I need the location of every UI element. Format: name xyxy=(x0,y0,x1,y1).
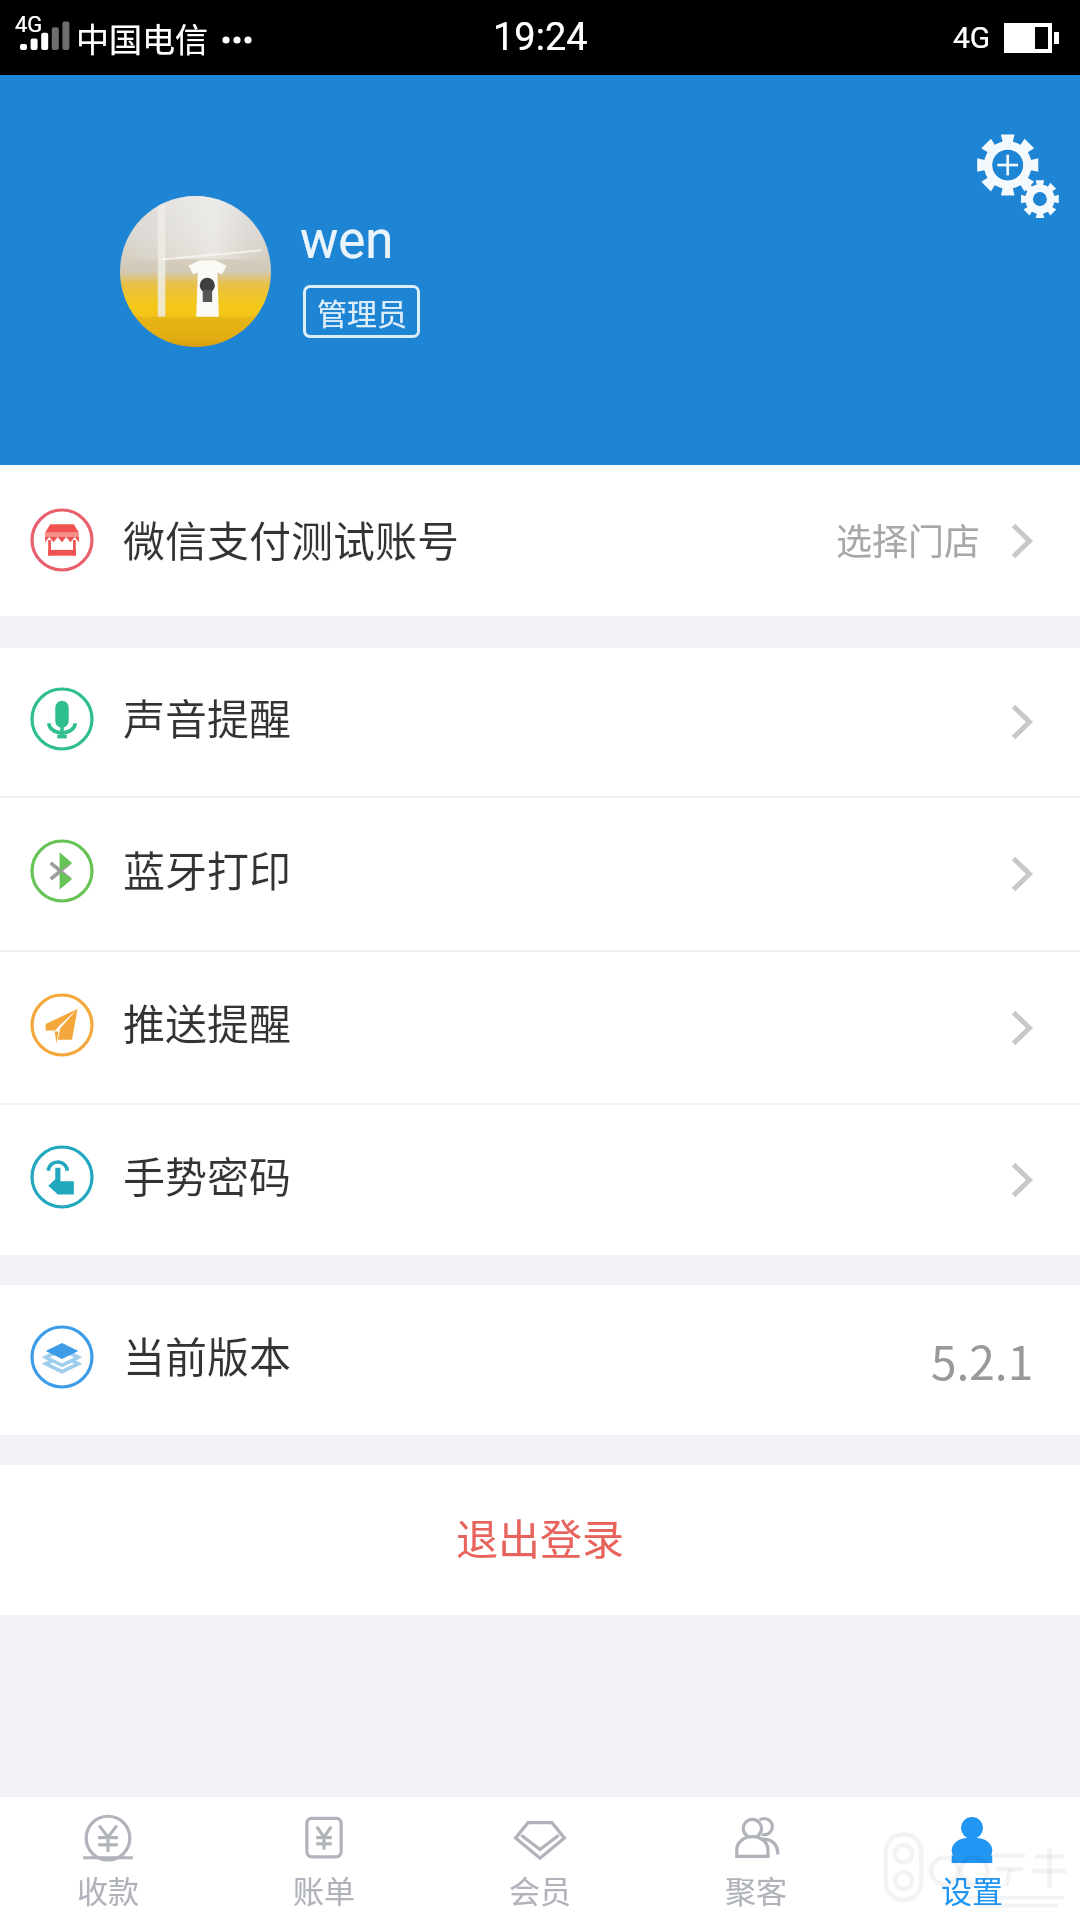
button[interactable]: Profile photo xyxy=(120,196,271,347)
button[interactable]: 聚客 xyxy=(648,1797,864,1920)
staticText: 选择门店 xyxy=(836,513,981,565)
staticText: 设置 xyxy=(941,1867,1003,1912)
staticText: 4G xyxy=(15,12,43,38)
staticText: 账单 xyxy=(293,1867,355,1912)
button[interactable]: 手势密码 xyxy=(0,1105,1080,1255)
button[interactable]: 管理员 xyxy=(303,285,420,338)
staticText: 声音提醒 xyxy=(123,686,292,747)
button[interactable]: 设置 xyxy=(864,1797,1080,1920)
button[interactable]: 当前版本 xyxy=(0,1285,1080,1435)
staticText: 收款 xyxy=(77,1867,139,1912)
staticText: 当前版本 xyxy=(123,1324,292,1385)
staticText: 4G xyxy=(953,20,991,55)
staticText: 管理员 xyxy=(317,290,407,333)
staticText: 微信支付测试账号 xyxy=(123,508,460,569)
button[interactable]: 会员 xyxy=(432,1797,648,1920)
staticText: 手势密码 xyxy=(123,1144,292,1205)
staticText: 5.2.1 xyxy=(931,1327,1034,1394)
staticText: 19:24 xyxy=(493,15,588,60)
button[interactable]: 推送提醒 xyxy=(0,952,1080,1103)
staticText: wen xyxy=(300,211,394,271)
button[interactable]: 账单 xyxy=(216,1797,432,1920)
button[interactable]: 微信支付测试账号 xyxy=(0,465,1080,616)
staticText: 聚客 xyxy=(725,1867,787,1912)
button[interactable]: Settings xyxy=(970,131,1062,223)
staticText: 退出登录 xyxy=(456,1506,625,1567)
button[interactable]: 声音提醒 xyxy=(0,648,1080,796)
button[interactable]: 收款 xyxy=(0,1797,216,1920)
button[interactable]: 蓝牙打印 xyxy=(0,798,1080,950)
button[interactable]: 退出登录 xyxy=(0,1465,1080,1615)
staticText: 推送提醒 xyxy=(123,991,292,1052)
staticText: 中国电信 xyxy=(76,14,208,62)
staticText: 蓝牙打印 xyxy=(123,838,292,899)
staticText: 会员 xyxy=(509,1867,571,1912)
